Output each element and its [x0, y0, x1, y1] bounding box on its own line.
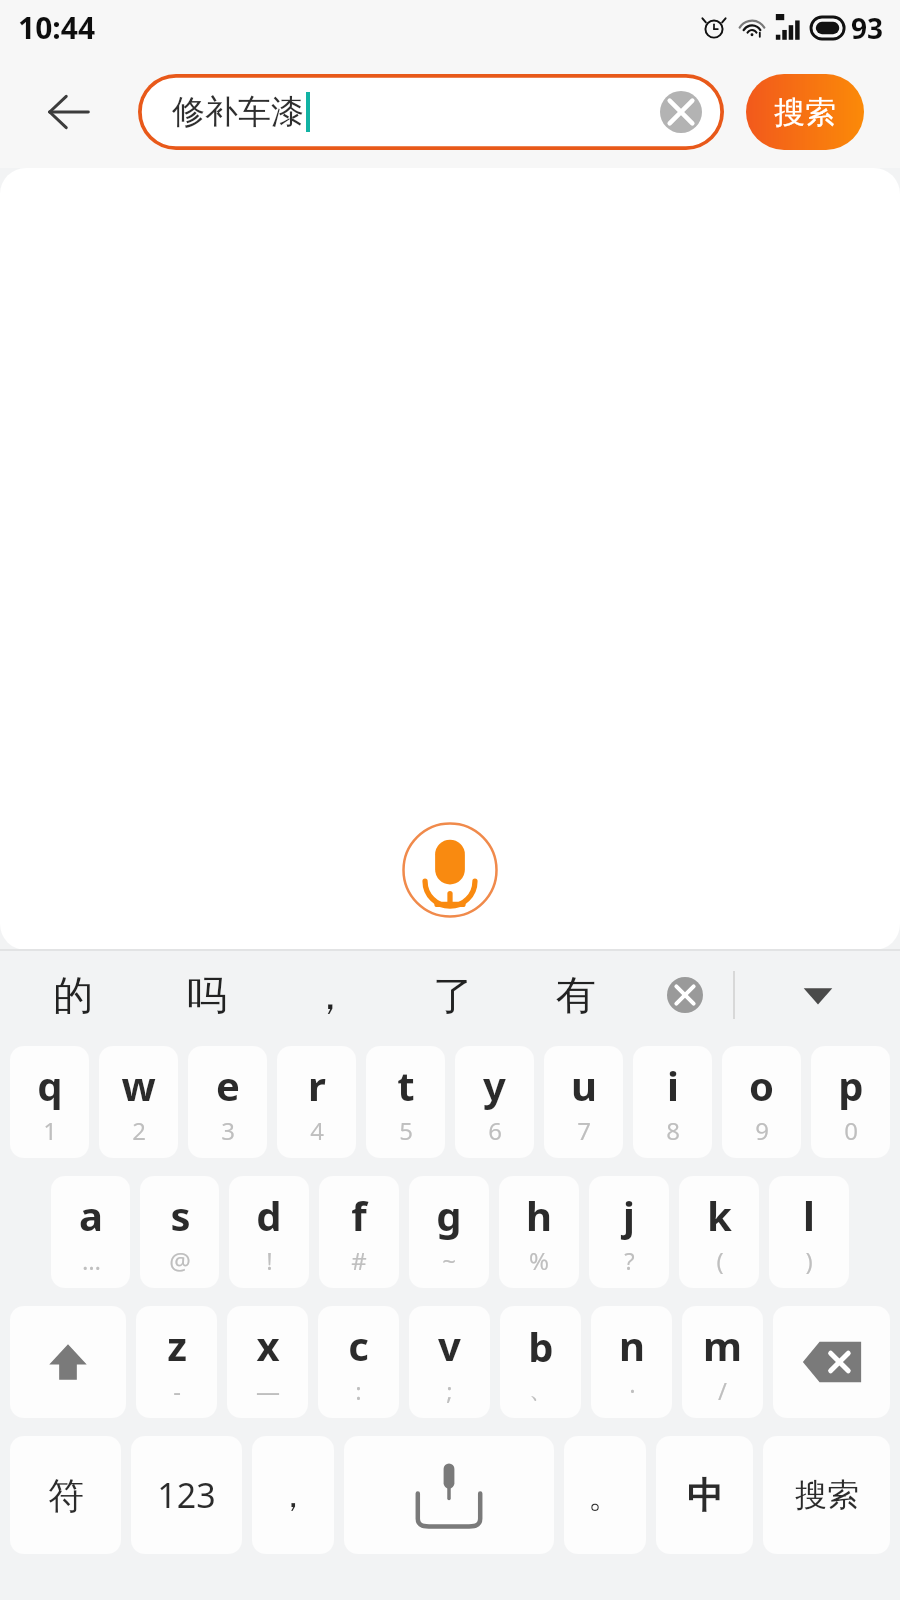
- button[interactable]: 了: [391, 950, 514, 1040]
- button[interactable]: c: [318, 1306, 399, 1418]
- button[interactable]: g: [409, 1176, 489, 1288]
- staticText: g: [436, 1188, 462, 1242]
- staticText: %: [529, 1244, 549, 1277]
- button[interactable]: d: [229, 1176, 309, 1288]
- staticText: 。: [588, 1474, 622, 1517]
- staticText: 、: [529, 1375, 553, 1405]
- staticText: 8: [666, 1114, 680, 1147]
- button[interactable]: k: [679, 1176, 759, 1288]
- staticText: r: [308, 1058, 326, 1112]
- staticText: !: [266, 1244, 273, 1277]
- staticText: 中: [687, 1473, 723, 1518]
- staticText: 9: [755, 1114, 769, 1147]
- button[interactable]: Back: [0, 55, 138, 168]
- button[interactable]: 的: [0, 950, 145, 1040]
- button[interactable]: 中: [656, 1436, 753, 1554]
- button[interactable]: 搜索: [763, 1436, 890, 1554]
- button[interactable]: 符: [10, 1436, 121, 1554]
- staticText: 2: [132, 1114, 146, 1147]
- button[interactable]: 。: [564, 1436, 646, 1554]
- staticText: ;: [446, 1374, 453, 1407]
- staticText: y: [483, 1058, 506, 1112]
- staticText: 10:44: [18, 7, 96, 48]
- button[interactable]: u: [544, 1046, 623, 1158]
- button[interactable]: m: [682, 1306, 763, 1418]
- staticText: f: [351, 1188, 367, 1242]
- staticText: c: [348, 1318, 369, 1372]
- staticText: v: [438, 1318, 461, 1372]
- staticText: ~: [442, 1244, 456, 1277]
- staticText: n: [619, 1318, 645, 1372]
- button[interactable]: Space: [344, 1436, 554, 1554]
- button[interactable]: Clear: [660, 91, 702, 133]
- button[interactable]: n: [591, 1306, 672, 1418]
- staticText: q: [37, 1058, 63, 1112]
- staticText: k: [707, 1188, 732, 1242]
- staticText: 93: [851, 9, 884, 47]
- staticText: 5: [399, 1114, 413, 1147]
- button[interactable]: s: [140, 1176, 219, 1288]
- button[interactable]: Voice input: [402, 822, 498, 918]
- staticText: 6: [488, 1114, 502, 1147]
- button[interactable]: e: [188, 1046, 267, 1158]
- staticText: h: [526, 1188, 552, 1242]
- staticText: i: [667, 1058, 679, 1112]
- button[interactable]: ，: [268, 950, 391, 1040]
- staticText: 有: [556, 970, 596, 1020]
- button[interactable]: 123: [131, 1436, 242, 1554]
- button[interactable]: w: [99, 1046, 178, 1158]
- button[interactable]: b: [500, 1306, 581, 1418]
- staticText: 修补车漆: [172, 91, 304, 133]
- button[interactable]: ，: [252, 1436, 334, 1554]
- button[interactable]: z: [136, 1306, 217, 1418]
- staticText: m: [703, 1318, 742, 1372]
- button[interactable]: q: [10, 1046, 89, 1158]
- staticText: /: [718, 1374, 727, 1407]
- button[interactable]: Shift: [10, 1306, 126, 1418]
- staticText: ): [805, 1244, 813, 1277]
- staticText: 123: [157, 1472, 216, 1518]
- staticText: s: [170, 1188, 191, 1242]
- staticText: 搜索: [795, 1475, 859, 1515]
- staticText: p: [838, 1058, 864, 1112]
- button[interactable]: 吗: [145, 950, 268, 1040]
- button[interactable]: o: [722, 1046, 801, 1158]
- button[interactable]: x: [227, 1306, 308, 1418]
- staticText: a: [79, 1188, 103, 1242]
- button[interactable]: f: [319, 1176, 399, 1288]
- staticText: w: [121, 1058, 156, 1112]
- staticText: ·: [629, 1374, 636, 1407]
- button[interactable]: i: [633, 1046, 712, 1158]
- staticText: (: [716, 1244, 724, 1277]
- staticText: 3: [221, 1114, 235, 1147]
- button[interactable]: h: [499, 1176, 579, 1288]
- staticText: o: [749, 1058, 774, 1112]
- staticText: ?: [624, 1244, 635, 1277]
- staticText: …: [82, 1244, 101, 1277]
- button[interactable]: t: [366, 1046, 445, 1158]
- staticText: u: [571, 1058, 597, 1112]
- staticText: 符: [48, 1473, 84, 1518]
- button[interactable]: y: [455, 1046, 534, 1158]
- button[interactable]: r: [277, 1046, 356, 1158]
- staticText: t: [397, 1058, 415, 1112]
- button[interactable]: j: [589, 1176, 669, 1288]
- staticText: z: [167, 1318, 187, 1372]
- staticText: j: [623, 1188, 635, 1242]
- button[interactable]: l: [769, 1176, 849, 1288]
- staticText: 1: [43, 1114, 57, 1147]
- button[interactable]: 修补车漆: [138, 74, 724, 150]
- button[interactable]: p: [811, 1046, 890, 1158]
- button[interactable]: 搜索: [746, 74, 864, 150]
- staticText: —: [256, 1374, 280, 1407]
- button[interactable]: a: [51, 1176, 130, 1288]
- staticText: #: [351, 1244, 367, 1277]
- staticText: :: [355, 1374, 362, 1407]
- button[interactable]: Backspace: [773, 1306, 890, 1418]
- button[interactable]: Collapse: [735, 950, 900, 1040]
- staticText: b: [528, 1319, 554, 1373]
- button[interactable]: Clear candidates: [637, 950, 733, 1040]
- button[interactable]: 有: [514, 950, 637, 1040]
- button[interactable]: v: [409, 1306, 490, 1418]
- staticText: -: [173, 1374, 181, 1407]
